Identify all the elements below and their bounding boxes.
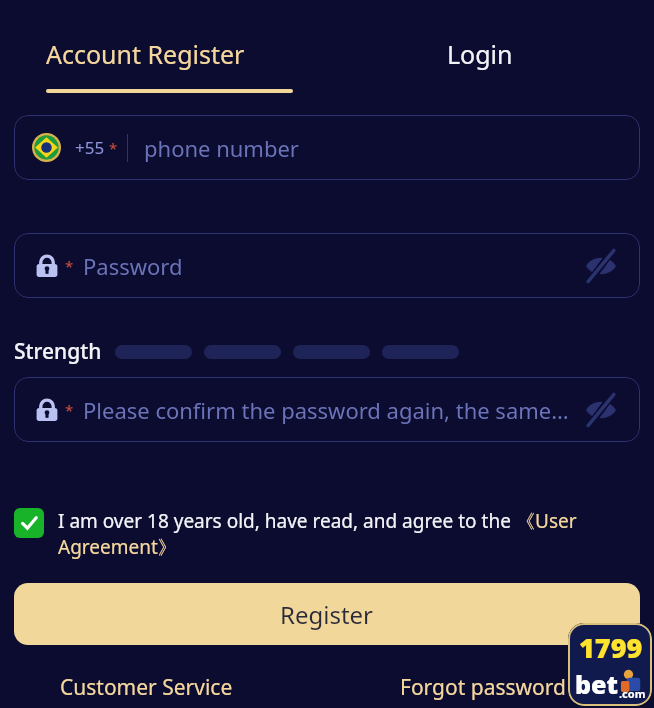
button[interactable]: Forgot password xyxy=(400,668,600,706)
button[interactable]: Agree checkbox xyxy=(14,505,640,560)
staticText: Agreement》 xyxy=(58,534,177,560)
button[interactable]: * xyxy=(14,377,640,442)
other: Agree checkbox xyxy=(14,508,44,538)
staticText: * xyxy=(65,400,74,420)
staticText: +55 xyxy=(75,136,105,159)
staticText: 1799 xyxy=(579,629,643,666)
staticText: .com xyxy=(619,686,646,701)
staticText: * xyxy=(65,256,74,276)
button[interactable]: Login xyxy=(447,30,522,78)
staticText: Register xyxy=(280,598,374,631)
button[interactable]: Customer Service xyxy=(60,668,290,706)
staticText: Customer Service xyxy=(60,673,233,702)
staticText: * xyxy=(109,138,118,158)
button[interactable]: +55 xyxy=(14,115,640,180)
button[interactable]: * xyxy=(14,233,640,298)
button[interactable]: Register xyxy=(14,583,640,645)
button[interactable]: Show confirm password xyxy=(580,389,622,431)
staticText: Password xyxy=(83,251,183,281)
button[interactable]: Show password xyxy=(580,245,622,287)
staticText: Forgot password xyxy=(400,673,566,702)
staticText: Please confirm the password again, the s… xyxy=(83,395,572,425)
staticText: 《User xyxy=(516,508,577,534)
staticText: phone number xyxy=(144,133,299,163)
staticText: bet xyxy=(575,667,619,701)
button[interactable]: Account Register xyxy=(46,30,293,78)
staticText: Login xyxy=(447,37,513,71)
staticText: Account Register xyxy=(46,37,245,71)
button[interactable]: 1799bet xyxy=(568,623,652,706)
staticText: I am over 18 years old, have read, and a… xyxy=(58,508,516,534)
staticText: Strength xyxy=(14,337,102,366)
